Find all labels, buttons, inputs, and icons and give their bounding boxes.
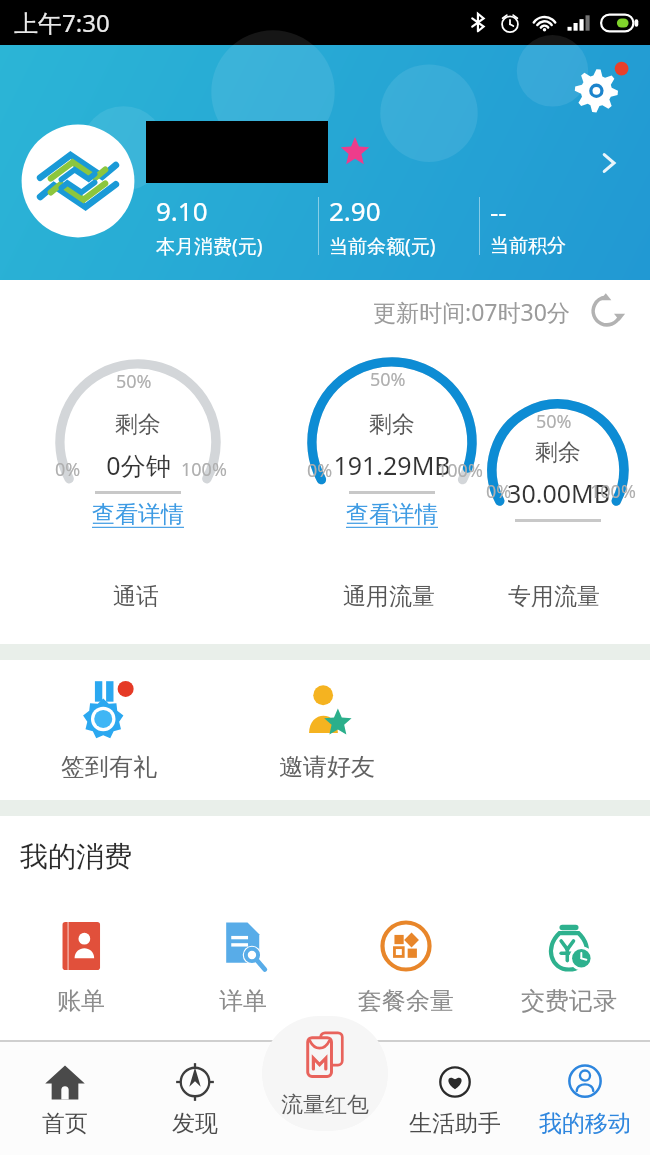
button[interactable]: 签到有礼: [0, 660, 218, 800]
button[interactable]: 2.90: [319, 193, 479, 259]
staticText: 0%: [486, 479, 512, 504]
staticText: 剩余: [535, 438, 581, 467]
staticText: 30.00MB: [507, 476, 610, 510]
button[interactable]: 查看详情: [92, 500, 184, 529]
staticText: 套餐余量: [358, 986, 454, 1016]
button[interactable]: 更多: [586, 140, 632, 186]
button[interactable]: 通用流量: [343, 582, 435, 611]
staticText: 剩余: [115, 410, 161, 439]
staticText: 0%: [55, 457, 81, 482]
button[interactable]: 设置: [570, 59, 630, 119]
staticText: 100%: [437, 458, 483, 483]
staticText: 详单: [219, 986, 267, 1016]
button[interactable]: 套餐余量: [324, 896, 487, 1038]
staticText: 我的移动: [539, 1109, 631, 1138]
staticText: 签到有礼: [61, 752, 157, 782]
button[interactable]: 通话: [113, 582, 159, 611]
button[interactable]: 我的移动: [520, 1042, 650, 1155]
button[interactable]: 发现: [130, 1042, 260, 1155]
staticText: 邀请好友: [279, 752, 375, 782]
staticText: 100%: [181, 457, 227, 482]
staticText: 流量红包: [281, 1091, 369, 1119]
staticText: 发现: [172, 1109, 218, 1138]
staticText: 生活助手: [409, 1109, 501, 1138]
staticText: 100%: [590, 479, 636, 504]
staticText: 0%: [307, 458, 333, 483]
staticText: 交费记录: [521, 986, 617, 1016]
staticText: 2.90: [329, 193, 381, 228]
staticText: 账单: [57, 986, 105, 1016]
staticText: 当前余额(元): [329, 233, 436, 259]
button[interactable]: 刷新: [584, 288, 630, 334]
staticText: 50%: [116, 369, 152, 394]
button[interactable]: 流量红包: [262, 1016, 388, 1131]
staticText: 本月消费(元): [156, 233, 263, 259]
staticText: 更新时间:07时30分: [373, 296, 570, 327]
button[interactable]: 生活助手: [390, 1042, 520, 1155]
button[interactable]: 邀请好友: [218, 660, 436, 800]
button[interactable]: 账单: [0, 896, 162, 1038]
button[interactable]: 9.10: [146, 193, 318, 259]
button[interactable]: 专用流量: [508, 582, 600, 611]
button[interactable]: 首页: [0, 1042, 130, 1155]
button[interactable]: 查看详情: [346, 500, 438, 529]
staticText: 查看详情: [346, 500, 438, 529]
staticText: 我的消费: [20, 839, 132, 874]
staticText: 50%: [536, 409, 572, 434]
staticText: 剩余: [369, 410, 415, 439]
staticText: 191.29MB: [333, 448, 451, 482]
staticText: 9.10: [156, 193, 208, 228]
staticText: 首页: [42, 1109, 88, 1138]
staticText: 查看详情: [92, 500, 184, 529]
staticText: --: [490, 194, 507, 229]
button[interactable]: --: [480, 194, 600, 258]
button[interactable]: 详单: [162, 896, 324, 1038]
staticText: 50%: [370, 367, 406, 392]
staticText: 0分钟: [106, 448, 171, 482]
staticText: 当前积分: [490, 234, 566, 258]
staticText: 上午7:30: [14, 6, 110, 39]
button[interactable]: 交费记录: [487, 896, 650, 1038]
